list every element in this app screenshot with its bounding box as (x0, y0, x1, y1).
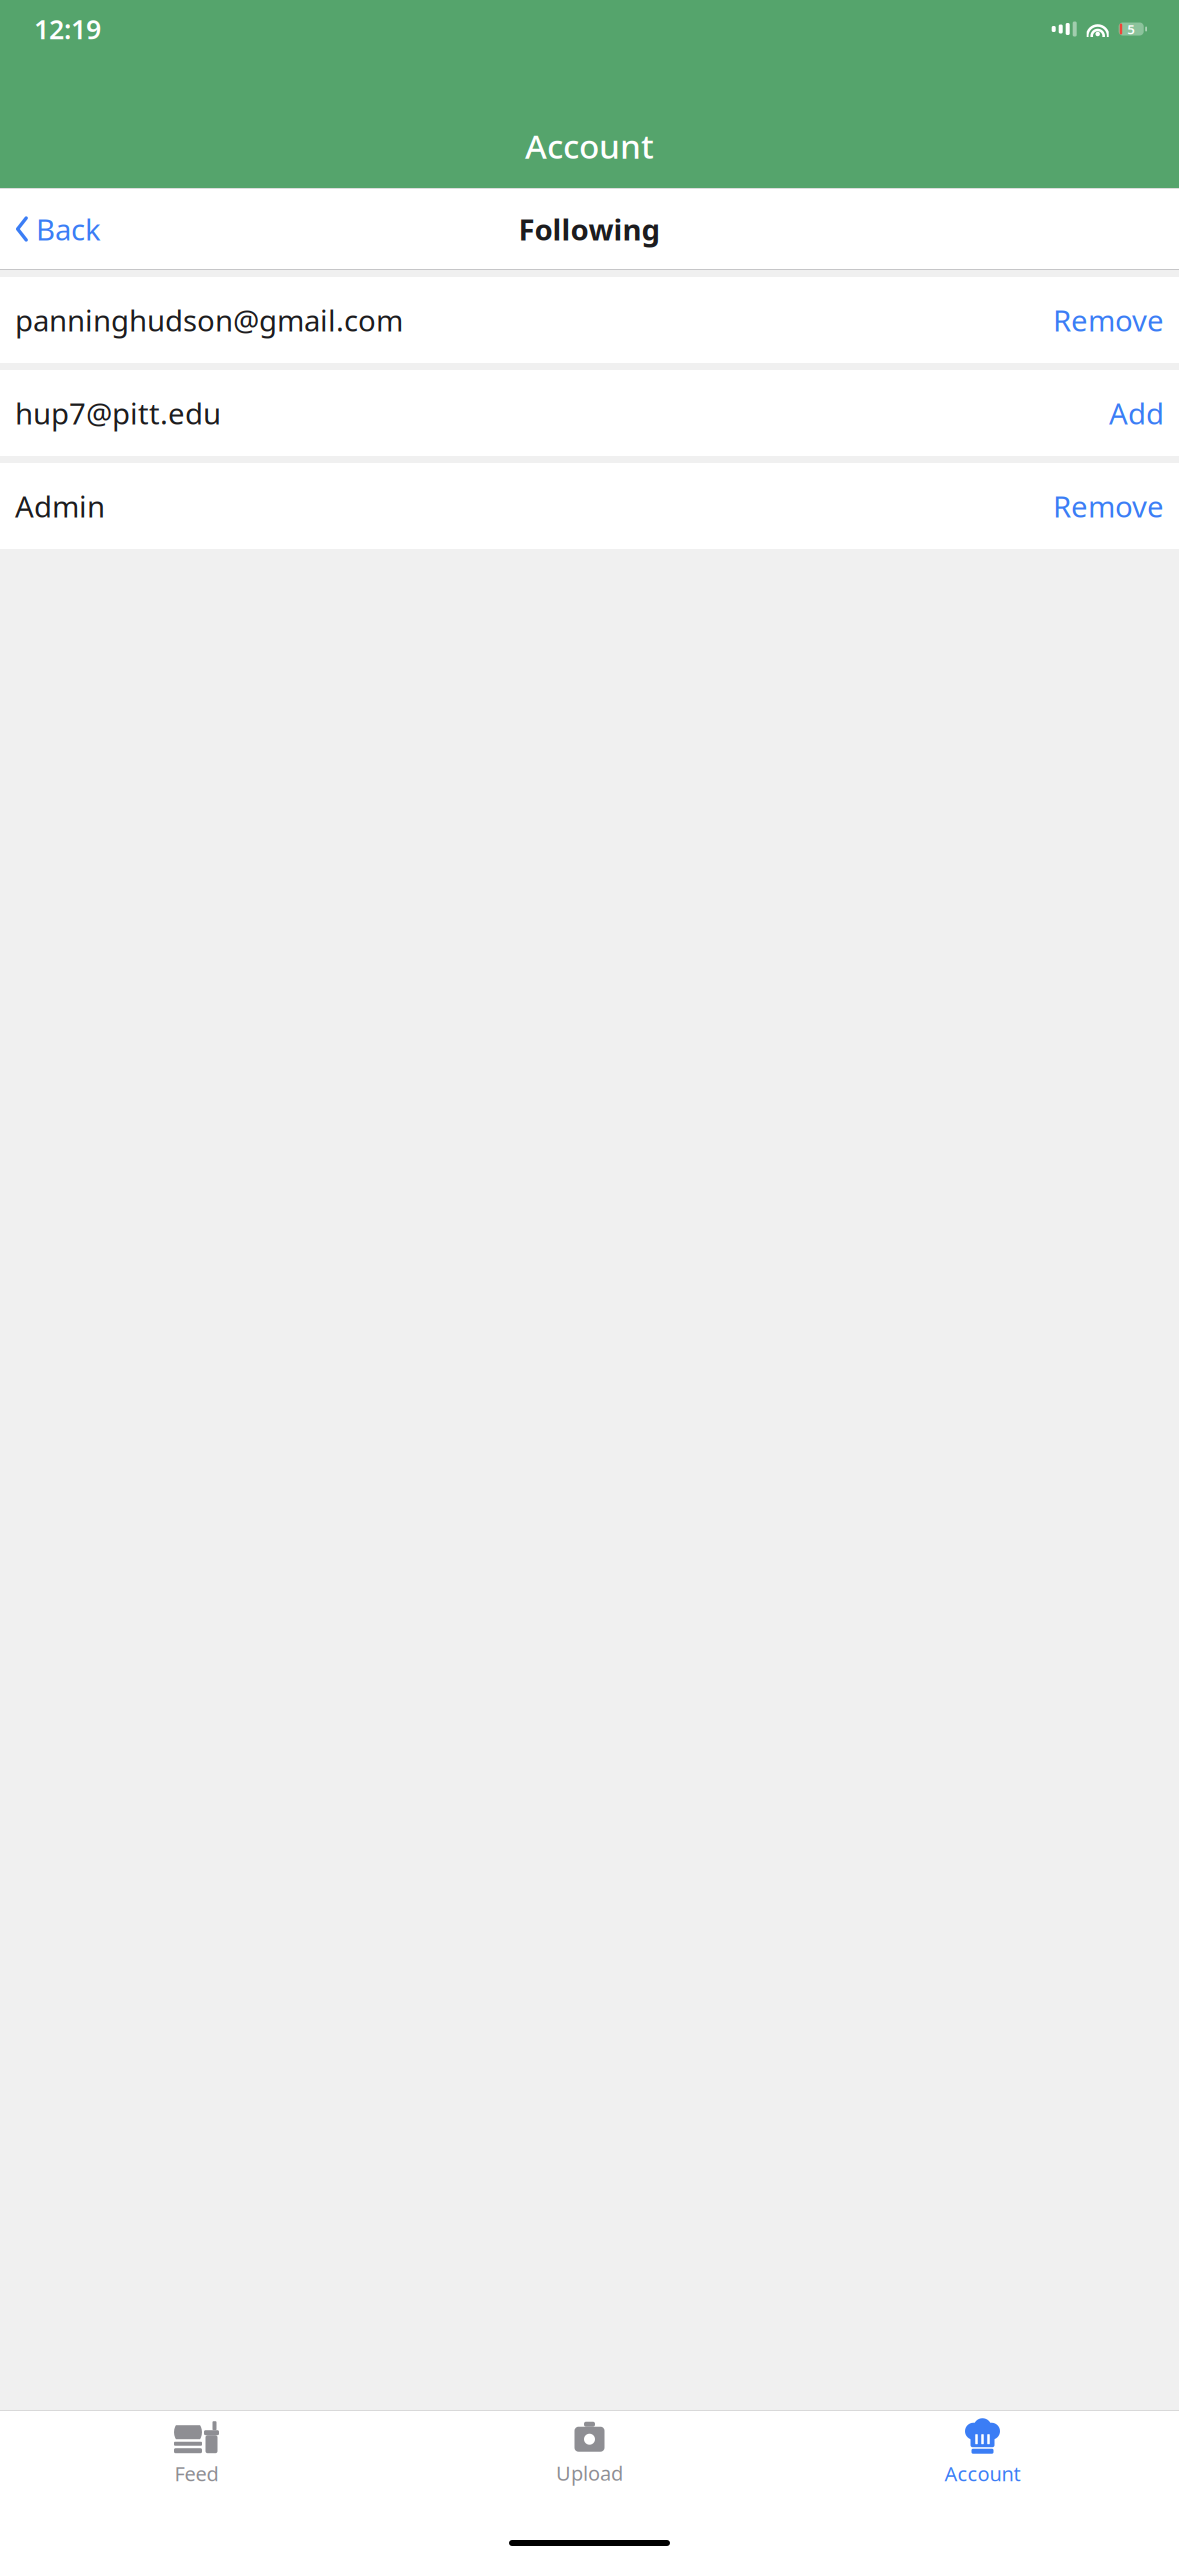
staticText: Back (36, 209, 101, 248)
staticText: Upload (556, 2460, 623, 2486)
button[interactable]: Feed (0, 2417, 393, 2491)
staticText: Feed (174, 2460, 218, 2487)
button[interactable]: Admin (0, 463, 1179, 549)
staticText: Account (525, 124, 654, 168)
staticText: Account (944, 2460, 1020, 2487)
staticText: Following (518, 209, 660, 248)
staticText: 5 (1127, 20, 1135, 38)
staticText: Remove (1053, 486, 1164, 525)
staticText: panninghudson@gmail.com (15, 300, 403, 339)
staticText: Remove (1053, 300, 1164, 339)
button[interactable]: Upload (393, 2417, 786, 2491)
staticText: hup7@pitt.edu (15, 393, 221, 432)
staticText: Admin (15, 486, 105, 525)
staticText: Add (1109, 393, 1164, 432)
staticText: 12:19 (34, 11, 101, 47)
button[interactable]: Back (0, 189, 113, 269)
button[interactable]: Account (786, 2417, 1179, 2491)
button[interactable]: hup7@pitt.edu (0, 370, 1179, 456)
button[interactable]: panninghudson@gmail.com (0, 277, 1179, 363)
